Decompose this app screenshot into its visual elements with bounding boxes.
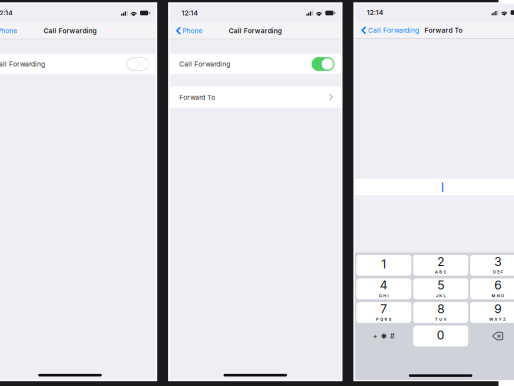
staticText: 5 <box>437 278 444 292</box>
staticText: Forward To <box>179 93 215 101</box>
button[interactable]: Call Forwarding <box>170 54 341 74</box>
staticText: + ✱ # <box>373 332 395 340</box>
button[interactable]: 6 <box>470 278 514 299</box>
staticText: Call Forwarding <box>179 60 230 68</box>
staticText: ABC <box>435 270 446 274</box>
staticText: Call Forwarding <box>43 27 96 35</box>
button[interactable]: Phone <box>170 22 206 39</box>
button[interactable]: 7 <box>356 302 411 323</box>
staticText: 4 <box>380 278 388 292</box>
button[interactable]: 0 <box>413 326 468 346</box>
staticText: WXYZ <box>489 317 506 322</box>
staticText: Forward To <box>424 26 462 34</box>
staticText: DEF <box>493 270 502 274</box>
staticText: 8 <box>437 301 444 316</box>
button[interactable]: Forward To <box>170 86 341 108</box>
button[interactable]: Delete <box>470 326 514 346</box>
button[interactable]: 9 <box>470 302 514 323</box>
button[interactable]: 3 <box>470 255 514 276</box>
staticText: 7 <box>380 301 387 316</box>
staticText: PQRS <box>376 317 392 322</box>
staticText: 3 <box>494 254 501 269</box>
staticText: Call Forwarding <box>368 26 419 34</box>
staticText: 12:14 <box>181 9 197 17</box>
staticText: 12:14 <box>367 8 383 17</box>
staticText: 1 <box>381 257 386 271</box>
button[interactable]: 4 <box>356 278 411 299</box>
staticText: Call Forwarding <box>229 27 282 35</box>
button[interactable]: 1 <box>356 255 411 276</box>
staticText: JKL <box>436 293 445 298</box>
staticText: 0 <box>437 328 445 342</box>
staticText: 12:14 <box>0 9 12 17</box>
button[interactable]: 2 <box>413 255 468 276</box>
button[interactable]: Call Forwarding <box>0 54 155 74</box>
staticText: 2 <box>437 254 444 269</box>
staticText: TUV <box>435 317 446 322</box>
button[interactable]: 8 <box>413 302 468 323</box>
staticText: Phone <box>0 27 17 35</box>
button[interactable]: Phone <box>0 22 20 39</box>
staticText: 9 <box>494 301 501 316</box>
button[interactable]: Symbols <box>356 326 411 346</box>
staticText: GHI <box>379 293 389 298</box>
button[interactable]: 5 <box>413 278 468 299</box>
staticText: Call Forwarding <box>0 60 45 68</box>
staticText: 6 <box>494 278 501 292</box>
button[interactable]: Call Forwarding <box>355 22 422 38</box>
staticText: MNO <box>491 293 504 298</box>
staticText: Phone <box>183 27 203 35</box>
